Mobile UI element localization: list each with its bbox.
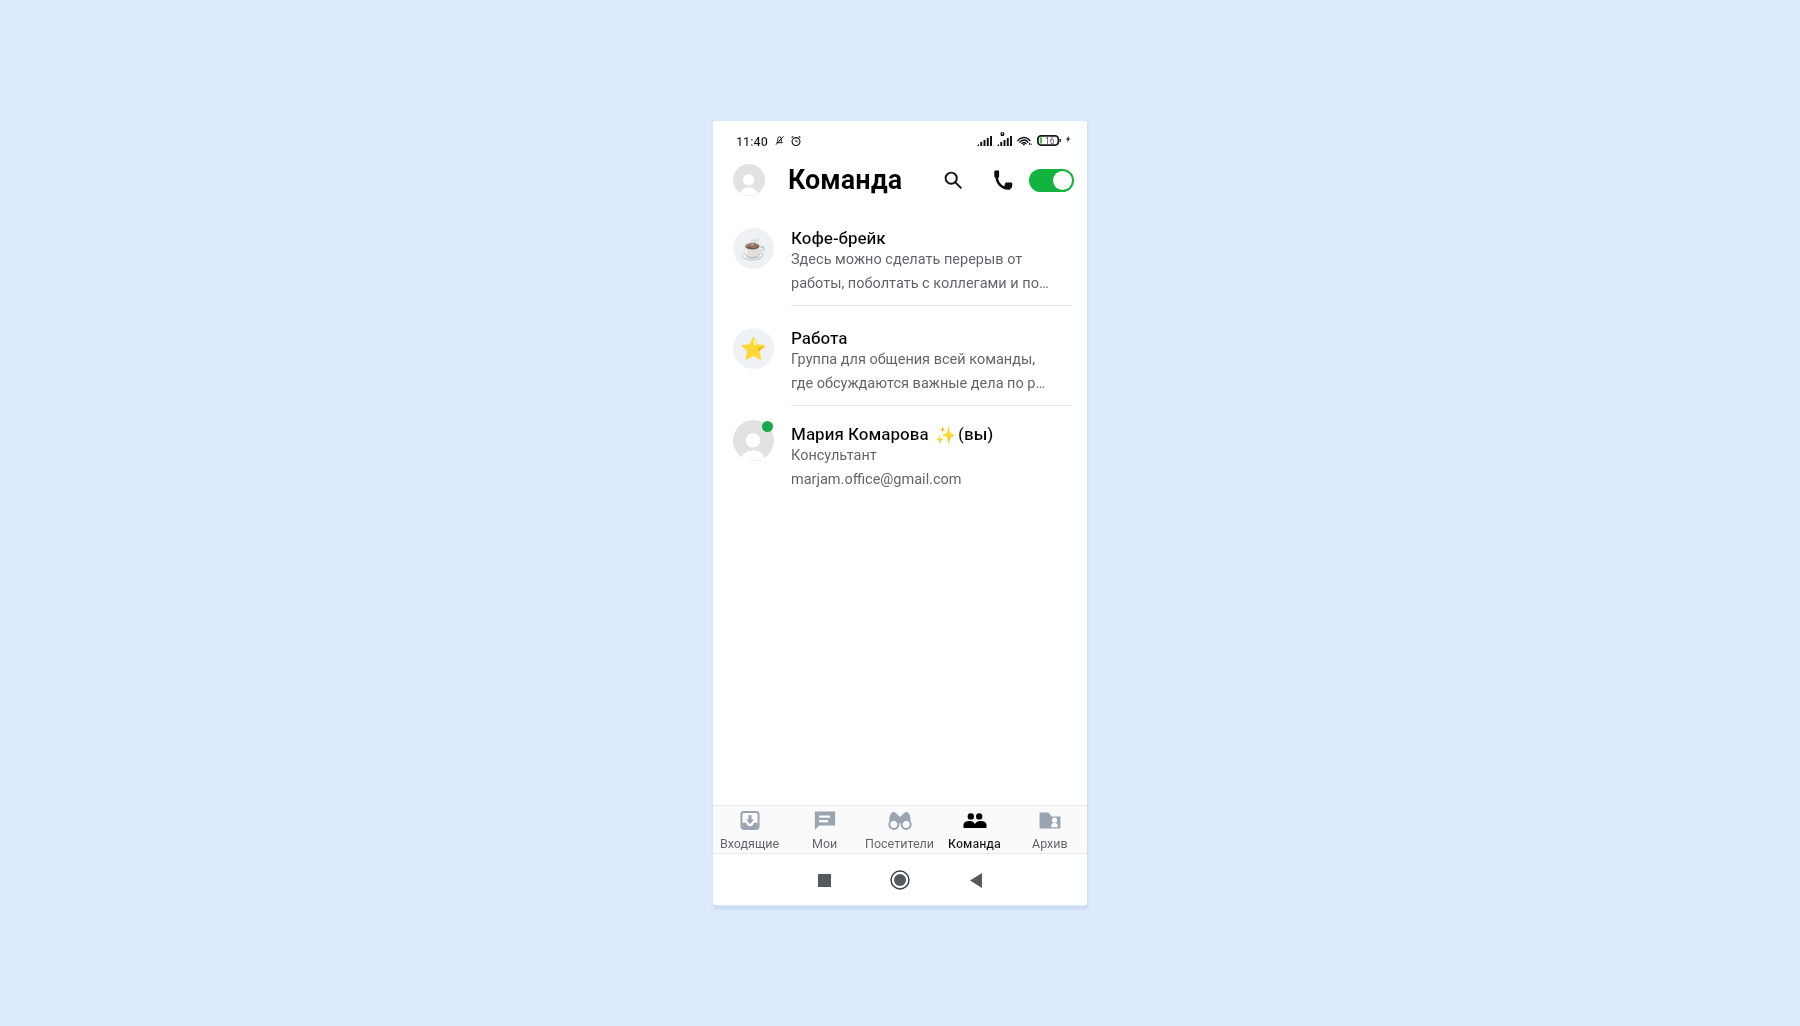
button[interactable]: Команда — [937, 806, 1012, 853]
staticText: 16 — [1045, 136, 1055, 146]
button[interactable]: ⭐ — [713, 306, 1087, 406]
button[interactable]: Архив — [1012, 806, 1087, 853]
staticText: ☕ — [740, 236, 767, 261]
staticText: Команда — [948, 836, 1001, 851]
staticText: Мария Комарова — [791, 424, 933, 444]
staticText: Кофе-брейк — [791, 228, 886, 248]
button[interactable]: Входящие — [713, 806, 787, 853]
staticText: Посетители — [865, 836, 934, 851]
staticText: (вы) — [958, 424, 994, 444]
staticText: где обсуждаются важные дела по р… — [791, 375, 1046, 392]
staticText: 11:40 — [736, 134, 768, 147]
button[interactable]: Мария Комарова — [713, 406, 1087, 501]
button[interactable]: Online toggle — [1029, 169, 1074, 192]
staticText: marjam.office@gmail.com — [791, 471, 962, 488]
button[interactable]: Мои — [787, 806, 862, 853]
button[interactable]: Profile — [733, 164, 765, 196]
button[interactable]: Search — [937, 165, 967, 195]
staticText: Мои — [812, 836, 838, 851]
staticText: Здесь можно сделать перерыв от — [791, 251, 1023, 268]
staticText: Группа для общения всей команды, — [791, 351, 1036, 368]
staticText: ⭐ — [740, 336, 767, 361]
staticText: Входящие — [720, 836, 780, 851]
staticText: Архив — [1032, 836, 1068, 851]
staticText: Консультант — [791, 447, 877, 464]
button[interactable]: Home — [862, 860, 938, 900]
button[interactable]: Посетители — [862, 806, 937, 853]
button[interactable]: Recents — [786, 860, 862, 900]
button[interactable]: Call — [988, 165, 1018, 195]
staticText: ✨ — [935, 425, 957, 444]
button[interactable]: ☕ — [713, 206, 1087, 306]
staticText: Команда — [788, 164, 903, 196]
button[interactable]: Back — [938, 860, 1014, 900]
staticText: Работа — [791, 328, 848, 348]
staticText: работы, поболтать с коллегами и по… — [791, 275, 1049, 292]
